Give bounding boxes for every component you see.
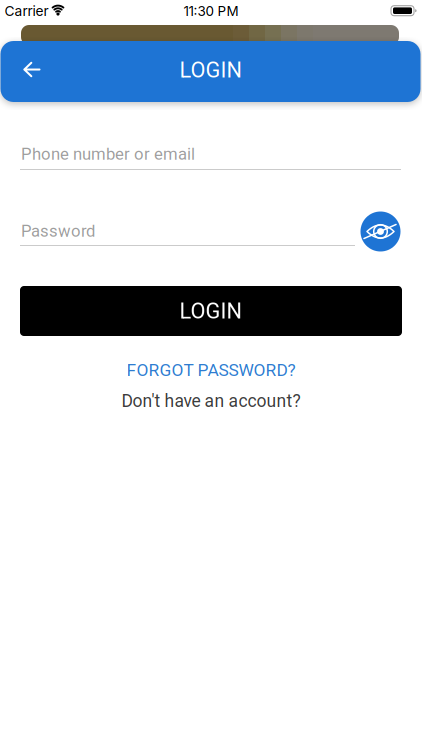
button[interactable] (8, 47, 52, 91)
button[interactable]: Don't have an account? (121, 391, 300, 411)
staticText: 11:30 PM (183, 3, 238, 19)
staticText: LOGIN (179, 298, 242, 324)
button[interactable]: FORGOT PASSWORD? (126, 360, 295, 380)
staticText: LOGIN (179, 57, 242, 83)
staticText: Carrier (4, 3, 48, 19)
staticText: Password (21, 221, 95, 241)
staticText: Phone number or email (21, 144, 195, 164)
staticText: FORGOT PASSWORD? (126, 360, 295, 380)
button[interactable]: LOGIN (20, 286, 402, 336)
staticText: Don't have an account? (121, 391, 300, 411)
button[interactable] (360, 211, 400, 251)
